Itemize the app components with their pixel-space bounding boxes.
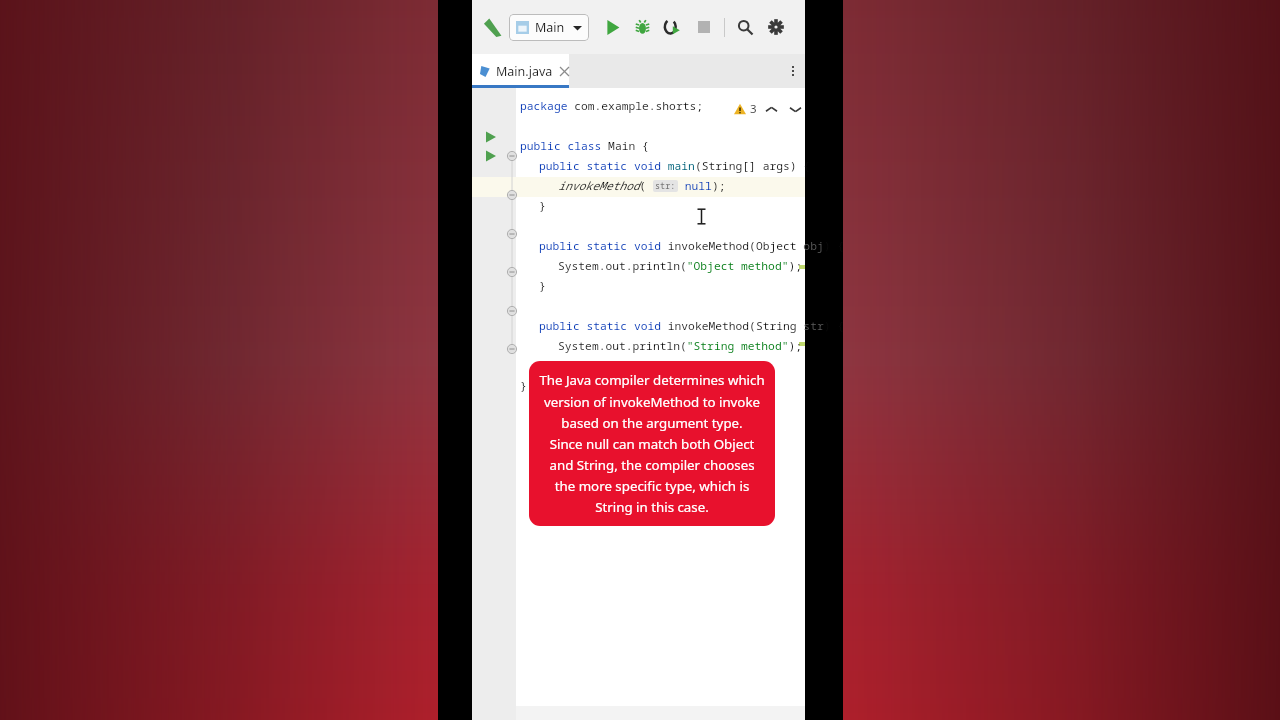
- staticText: Main.java: [496, 63, 553, 80]
- button[interactable]: Settings: [764, 15, 788, 39]
- button[interactable]: Debug: [630, 15, 654, 39]
- staticText: public static void invokeMethod(Object o…: [539, 238, 845, 253]
- staticText: }: [539, 278, 546, 293]
- staticText: package com.example.shorts;: [520, 98, 704, 113]
- button[interactable]: Main.java: [472, 54, 569, 88]
- button[interactable]: More options: [786, 64, 800, 78]
- staticText: }: [539, 198, 546, 213]
- staticText: }: [539, 358, 546, 373]
- button[interactable]: Search: [733, 15, 757, 39]
- staticText: public class Main {: [520, 138, 649, 153]
- staticText: public static void main(String[] args) {: [539, 158, 811, 173]
- staticText: System.out.println("Object method");: [558, 258, 803, 273]
- staticText: Main: [535, 19, 565, 36]
- staticText: System.out.println("String method");: [558, 338, 803, 353]
- staticText: str:: [655, 180, 676, 192]
- button[interactable]: Run with coverage: [660, 15, 684, 39]
- button[interactable]: The Java compiler determines which versi…: [529, 361, 775, 526]
- staticText: invokeMethod(: [558, 178, 653, 193]
- button[interactable]: 3 warnings: [734, 101, 801, 117]
- button[interactable]: Stop: [692, 15, 716, 39]
- staticText: 3: [750, 101, 757, 117]
- staticText: null);: [678, 178, 726, 193]
- staticText: }: [520, 378, 527, 393]
- staticText: The Java compiler determines which versi…: [538, 371, 766, 516]
- button[interactable]: Main: [509, 14, 589, 41]
- button[interactable]: Navigate back: [480, 15, 504, 39]
- staticText: public static void invokeMethod(String s…: [539, 318, 845, 333]
- button[interactable]: Run: [600, 15, 624, 39]
